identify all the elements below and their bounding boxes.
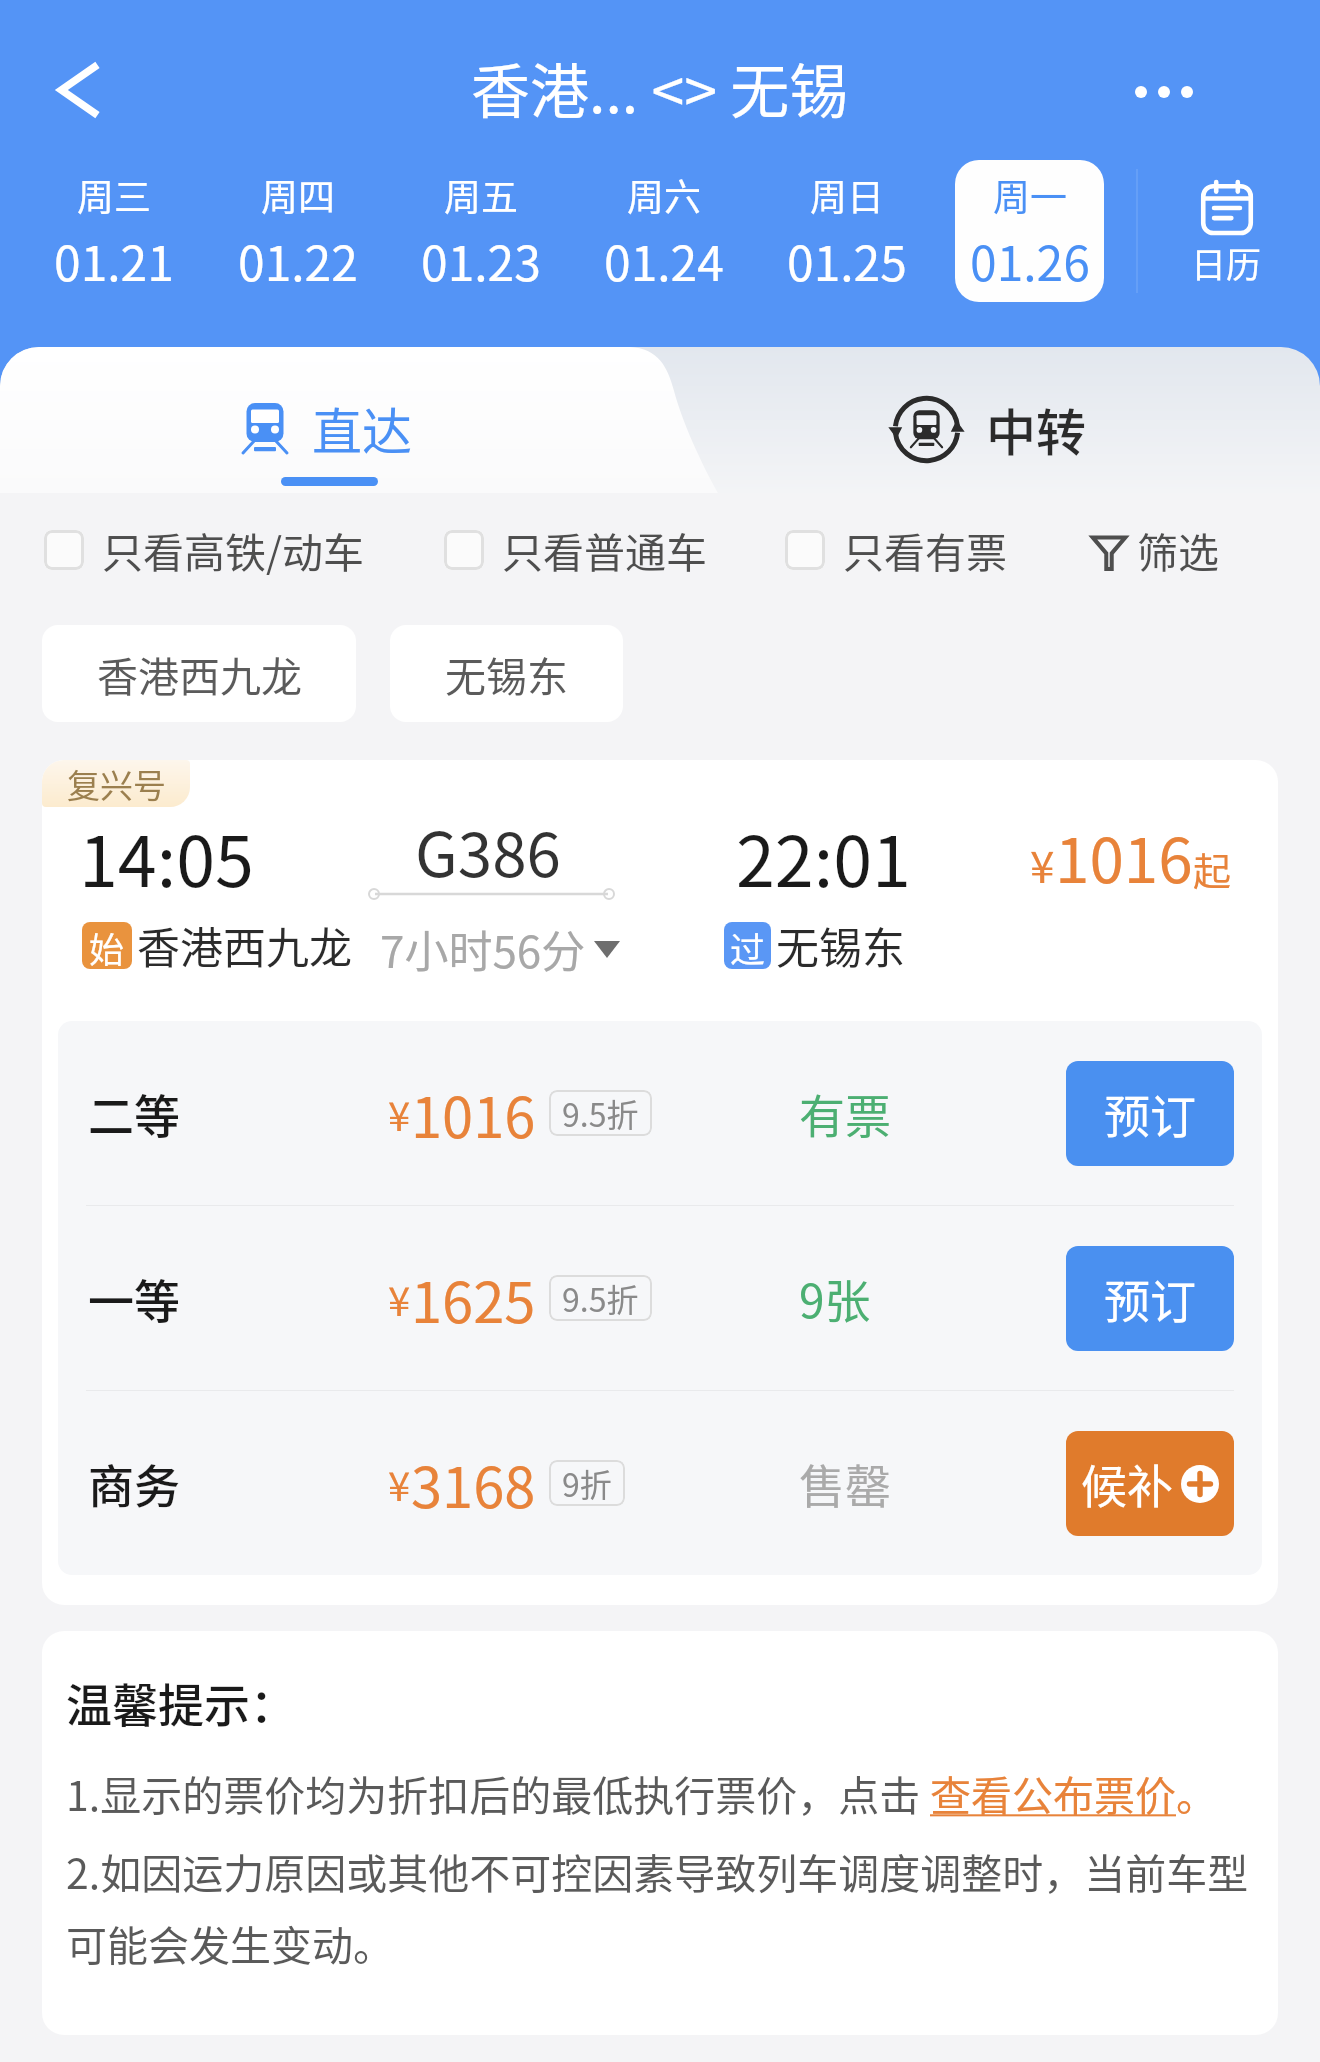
button[interactable]: 无锡东 — [390, 625, 623, 722]
button[interactable]: 只看有票 — [785, 493, 1007, 606]
button[interactable]: 日历 — [1153, 151, 1320, 311]
staticText: 1625 — [411, 1258, 536, 1339]
staticText: 只看普通车 — [502, 520, 707, 579]
staticText: 无锡东 — [445, 644, 568, 703]
button[interactable]: 中转 — [725, 347, 1320, 493]
button[interactable]: 复兴号 — [42, 760, 1278, 1605]
staticText: ¥ — [1030, 832, 1055, 896]
staticText: 预订 — [1104, 1080, 1196, 1147]
staticText: ¥ — [388, 1085, 411, 1143]
staticText: 1016 — [411, 1073, 536, 1154]
staticText: 有票 — [799, 1080, 891, 1147]
button[interactable]: 香港西九龙 — [42, 625, 356, 722]
staticText: 只看有票 — [843, 520, 1007, 579]
staticText: 周五 — [444, 168, 518, 222]
staticText: 22:01 — [736, 806, 911, 907]
staticText: ¥ — [388, 1270, 411, 1328]
staticText: 过 — [730, 922, 766, 969]
staticText: 01.21 — [54, 225, 174, 295]
staticText: 01.22 — [238, 225, 358, 295]
staticText: 售罄 — [799, 1450, 891, 1517]
staticText: 9.5折 — [562, 1090, 639, 1136]
staticText: G386 — [415, 805, 561, 895]
staticText: 起 — [1193, 841, 1232, 896]
button[interactable]: 候补 — [1066, 1431, 1234, 1536]
staticText: 9.5折 — [562, 1275, 639, 1321]
button[interactable]: 周四 — [223, 160, 372, 302]
staticText: 无锡东 — [776, 914, 905, 976]
staticText: 周四 — [261, 168, 335, 222]
staticText: 01.25 — [787, 225, 907, 295]
staticText: 01.23 — [421, 225, 541, 295]
staticText: 中转 — [986, 393, 1086, 465]
staticText: 。 — [1176, 1763, 1217, 1822]
button[interactable]: 周日 — [772, 160, 921, 302]
button[interactable]: 筛选 — [1092, 493, 1219, 606]
staticText: ¥ — [388, 1455, 411, 1513]
staticText: 9张 — [799, 1265, 871, 1332]
button[interactable]: 周五 — [406, 160, 555, 302]
staticText: 香港... <> 无锡 — [471, 45, 849, 130]
button[interactable]: Back — [0, 0, 152, 151]
staticText: 日历 — [1191, 237, 1262, 288]
button[interactable]: 周三 — [39, 160, 189, 302]
staticText: 温馨提示： — [66, 1669, 296, 1736]
staticText: 筛选 — [1137, 520, 1219, 579]
staticText: 香港西九龙 — [97, 644, 302, 703]
button[interactable]: 周六 — [589, 160, 738, 302]
staticText: 3168 — [411, 1443, 536, 1524]
staticText: 候补 — [1081, 1450, 1173, 1517]
staticText: 1.显示的票价均为折扣后的最低执行票价，点击 — [66, 1763, 930, 1822]
staticText: 商务 — [88, 1450, 180, 1517]
staticText: 周一 — [993, 168, 1067, 222]
staticText: 香港西九龙 — [137, 914, 352, 976]
staticText: 7小时56分 — [380, 917, 586, 981]
staticText: 01.26 — [970, 225, 1090, 295]
staticText: 预订 — [1104, 1265, 1196, 1332]
staticText: 2.如因运力原因或其他不可控因素导致列车调度调整时，当前车型可能会发生变动。 — [66, 1841, 1256, 1972]
staticText: 01.24 — [604, 225, 724, 295]
button[interactable]: 只看高铁/动车 — [44, 493, 365, 606]
button[interactable]: 只看普通车 — [444, 493, 707, 606]
button[interactable]: More options — [1020, 0, 1320, 151]
button[interactable]: 周一 — [955, 160, 1104, 302]
button[interactable]: 预订 — [1066, 1061, 1234, 1166]
staticText: 查看公布票价 — [930, 1763, 1176, 1822]
staticText: 周三 — [77, 168, 151, 222]
staticText: 1016 — [1055, 811, 1193, 901]
staticText: 直达 — [312, 392, 412, 464]
staticText: 始 — [89, 922, 125, 969]
staticText: 9折 — [562, 1460, 612, 1506]
button[interactable]: 预订 — [1066, 1246, 1234, 1351]
staticText: 周日 — [810, 168, 884, 222]
button[interactable]: 直达 — [0, 347, 645, 493]
staticText: 只看高铁/动车 — [102, 520, 365, 579]
staticText: 复兴号 — [67, 760, 166, 807]
staticText: 一等 — [88, 1265, 180, 1332]
staticText: 周六 — [627, 168, 701, 222]
staticText: 二等 — [88, 1080, 180, 1147]
staticText: 14:05 — [79, 806, 254, 907]
